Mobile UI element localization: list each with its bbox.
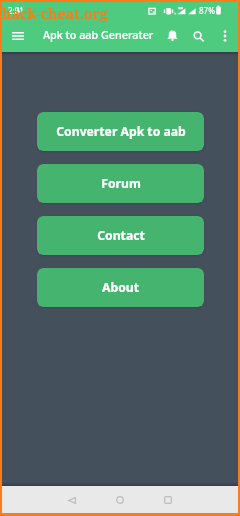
button[interactable]: Recent apps [156, 488, 180, 512]
staticText: About [102, 279, 139, 296]
button[interactable]: Forum [37, 164, 204, 203]
staticText: 2:01 [8, 5, 24, 16]
button[interactable]: More options [213, 24, 237, 48]
button[interactable]: Home [108, 488, 132, 512]
staticText: Converter Apk to aab [56, 123, 186, 140]
button[interactable]: About [37, 268, 204, 307]
staticText: hack-cheat.org [2, 4, 108, 23]
button[interactable]: Back [60, 488, 84, 512]
button[interactable]: Search [187, 25, 211, 49]
button[interactable]: Navigation menu [6, 24, 30, 48]
button[interactable]: Converter Apk to aab [37, 112, 204, 151]
staticText: Contact [97, 227, 145, 244]
staticText: 87% [199, 5, 215, 16]
staticText: Apk to aab Generater [43, 27, 154, 42]
button[interactable]: Contact [37, 216, 204, 255]
staticText: Forum [101, 175, 141, 192]
button[interactable]: Notifications [160, 23, 184, 47]
